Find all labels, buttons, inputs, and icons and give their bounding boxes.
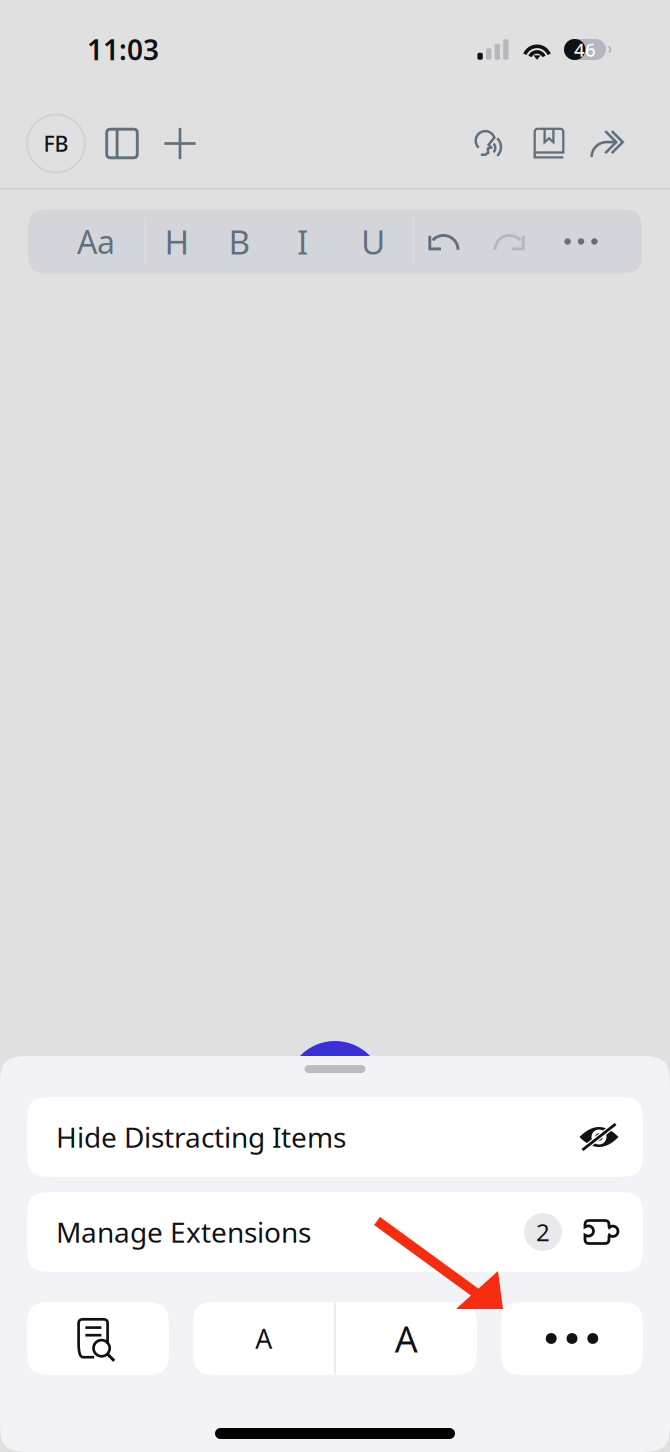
- staticText: B: [228, 219, 250, 264]
- staticText: Aa: [77, 220, 115, 263]
- staticText: Hide Distracting Items: [56, 1118, 346, 1156]
- staticText: A: [255, 1321, 272, 1356]
- button[interactable]: B: [208, 209, 271, 273]
- button[interactable]: I: [271, 209, 334, 273]
- staticText: Manage Extensions: [56, 1213, 311, 1251]
- button[interactable]: Larger text: [335, 1302, 477, 1375]
- button[interactable]: Listen to page: [464, 114, 518, 172]
- button[interactable]: Manage Extensions: [27, 1192, 643, 1272]
- button[interactable]: New page: [153, 114, 207, 172]
- staticText: A: [395, 1315, 418, 1362]
- staticText: I: [297, 219, 308, 264]
- button[interactable]: More options: [501, 1302, 643, 1375]
- button[interactable]: H: [146, 209, 208, 273]
- button[interactable]: U: [334, 209, 412, 273]
- staticText: FB: [43, 129, 68, 158]
- staticText: 46: [574, 37, 596, 62]
- button[interactable]: Undo: [414, 209, 476, 273]
- button[interactable]: Bookmarks: [522, 114, 576, 172]
- button[interactable]: Share: [580, 114, 634, 172]
- button[interactable]: Account FB: [27, 114, 85, 172]
- staticText: H: [164, 219, 189, 264]
- button[interactable]: Smaller text: [193, 1302, 334, 1375]
- button[interactable]: Show sidebar: [95, 114, 149, 172]
- staticText: 2: [536, 1216, 550, 1248]
- button[interactable]: More formatting options: [540, 209, 622, 273]
- staticText: 11:03: [87, 31, 159, 68]
- button[interactable]: Aa: [48, 209, 144, 273]
- button[interactable]: Hide Distracting Items: [27, 1097, 643, 1177]
- button[interactable]: Find on page: [27, 1302, 169, 1375]
- staticText: U: [361, 219, 385, 264]
- button[interactable]: Redo: [476, 209, 540, 273]
